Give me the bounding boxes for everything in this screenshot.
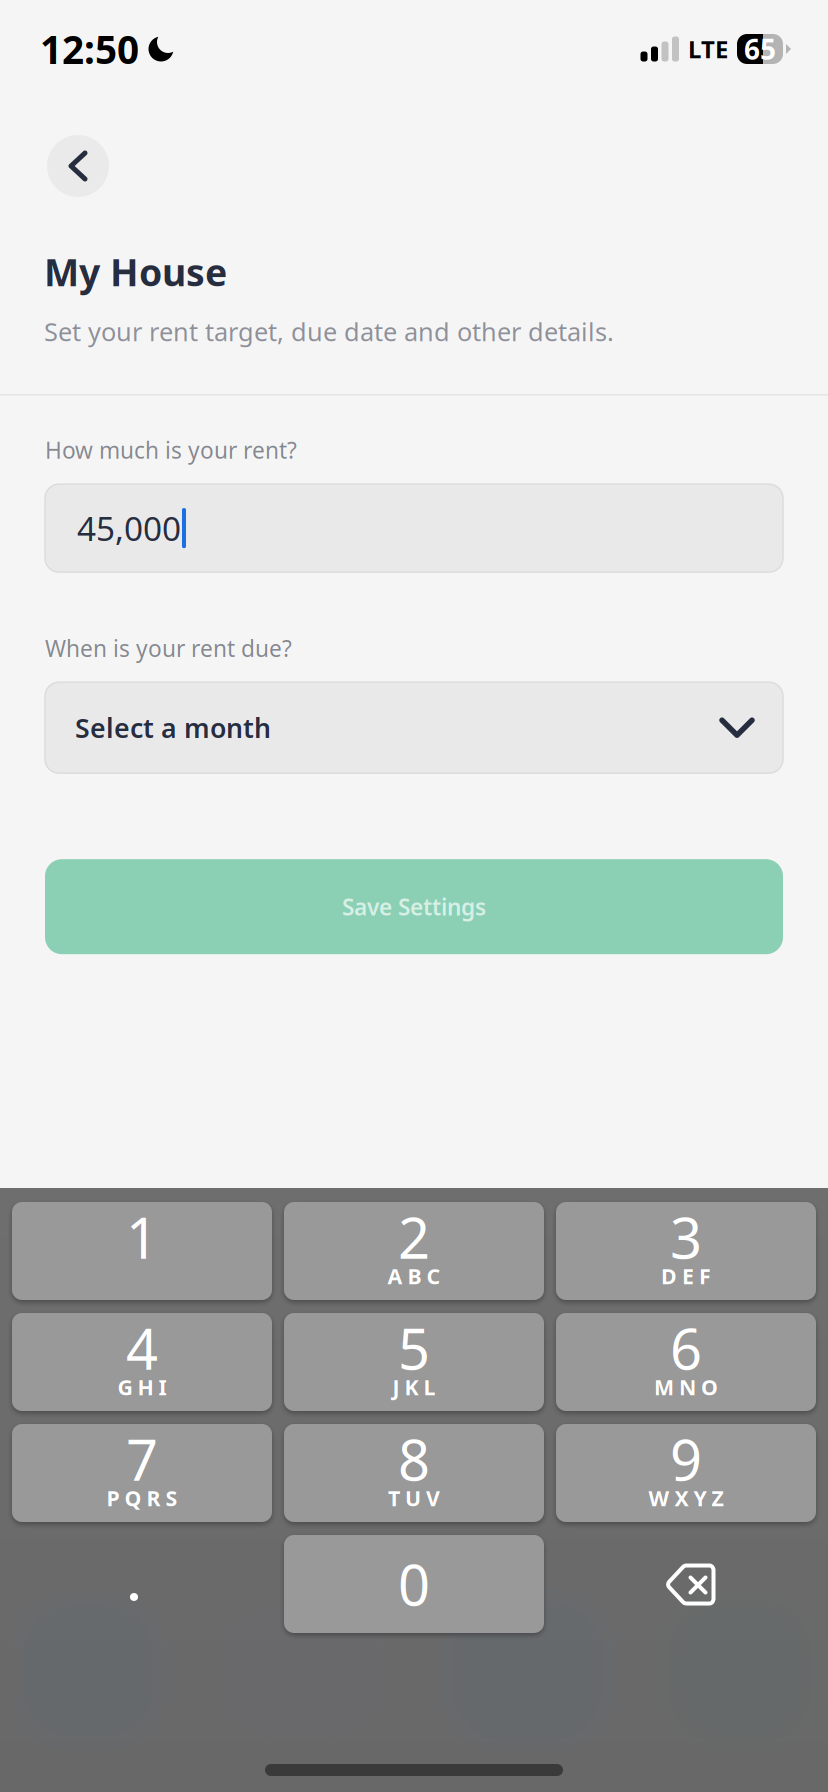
staticText: GHI bbox=[117, 1373, 166, 1401]
button[interactable]: Select a month bbox=[45, 682, 783, 773]
button[interactable]: 45,000 bbox=[45, 484, 783, 572]
button[interactable]: Delete bbox=[556, 1535, 816, 1633]
button[interactable]: 9 bbox=[556, 1424, 816, 1522]
staticText: 9 bbox=[670, 1422, 702, 1496]
button[interactable]: 4 bbox=[12, 1313, 272, 1411]
staticText: ABC bbox=[387, 1262, 440, 1290]
staticText: 12:50 bbox=[40, 23, 139, 75]
button[interactable]: Back bbox=[47, 135, 109, 197]
button[interactable]: 7 bbox=[12, 1424, 272, 1522]
staticText: 4 bbox=[126, 1311, 158, 1385]
staticText: 5 bbox=[398, 1311, 430, 1385]
staticText: JKL bbox=[392, 1373, 435, 1401]
staticText: 45,000 bbox=[77, 506, 181, 550]
staticText: DEF bbox=[661, 1262, 711, 1290]
staticText: How much is your rent? bbox=[45, 435, 297, 465]
button[interactable]: 5 bbox=[284, 1313, 544, 1411]
staticText: Save Settings bbox=[342, 892, 486, 922]
staticText: 3 bbox=[670, 1200, 702, 1274]
button[interactable]: 2 bbox=[284, 1202, 544, 1300]
staticText: 7 bbox=[126, 1422, 158, 1496]
button[interactable]: 8 bbox=[284, 1424, 544, 1522]
staticText: 0 bbox=[398, 1547, 430, 1621]
button[interactable]: Save Settings bbox=[45, 859, 783, 954]
staticText: Select a month bbox=[75, 710, 271, 745]
button[interactable]: Decimal point bbox=[12, 1535, 272, 1633]
button[interactable]: 3 bbox=[556, 1202, 816, 1300]
staticText: 1 bbox=[126, 1200, 158, 1274]
button[interactable]: 6 bbox=[556, 1313, 816, 1411]
staticText: WXYZ bbox=[648, 1484, 723, 1512]
staticText: Set your rent target, due date and other… bbox=[44, 315, 614, 348]
staticText: MNO bbox=[654, 1373, 718, 1401]
staticText: PQRS bbox=[106, 1484, 177, 1512]
staticText: When is your rent due? bbox=[45, 633, 292, 663]
staticText: LTE bbox=[688, 33, 728, 65]
staticText: 6 bbox=[670, 1311, 702, 1385]
staticText: My House bbox=[44, 247, 227, 297]
staticText: TUV bbox=[388, 1484, 440, 1512]
button[interactable]: 1 bbox=[12, 1202, 272, 1300]
button[interactable]: 0 bbox=[284, 1535, 544, 1633]
staticText: 65 bbox=[744, 30, 776, 68]
staticText: 8 bbox=[398, 1422, 430, 1496]
staticText: 2 bbox=[398, 1200, 430, 1274]
